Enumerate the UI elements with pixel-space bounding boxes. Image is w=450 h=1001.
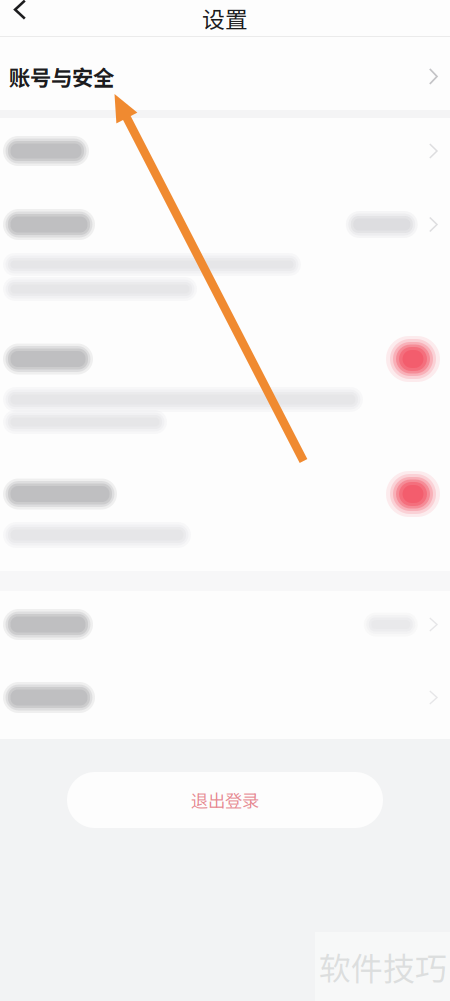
button[interactable]: Toggle setting [384, 471, 442, 517]
staticText: 设置 [202, 2, 248, 34]
button[interactable]: Toggle setting [384, 336, 442, 382]
button[interactable]: Back [0, 0, 40, 36]
staticText: 账号与安全 [9, 61, 114, 92]
staticText: 软件技巧 [319, 943, 447, 990]
button[interactable] [0, 118, 450, 187]
button[interactable] [0, 187, 450, 321]
staticText: 退出登录 [191, 787, 259, 813]
button[interactable]: 退出登录 [67, 772, 383, 828]
button[interactable] [0, 656, 450, 739]
button[interactable]: 账号与安全 [0, 37, 450, 110]
button[interactable] [0, 591, 450, 656]
